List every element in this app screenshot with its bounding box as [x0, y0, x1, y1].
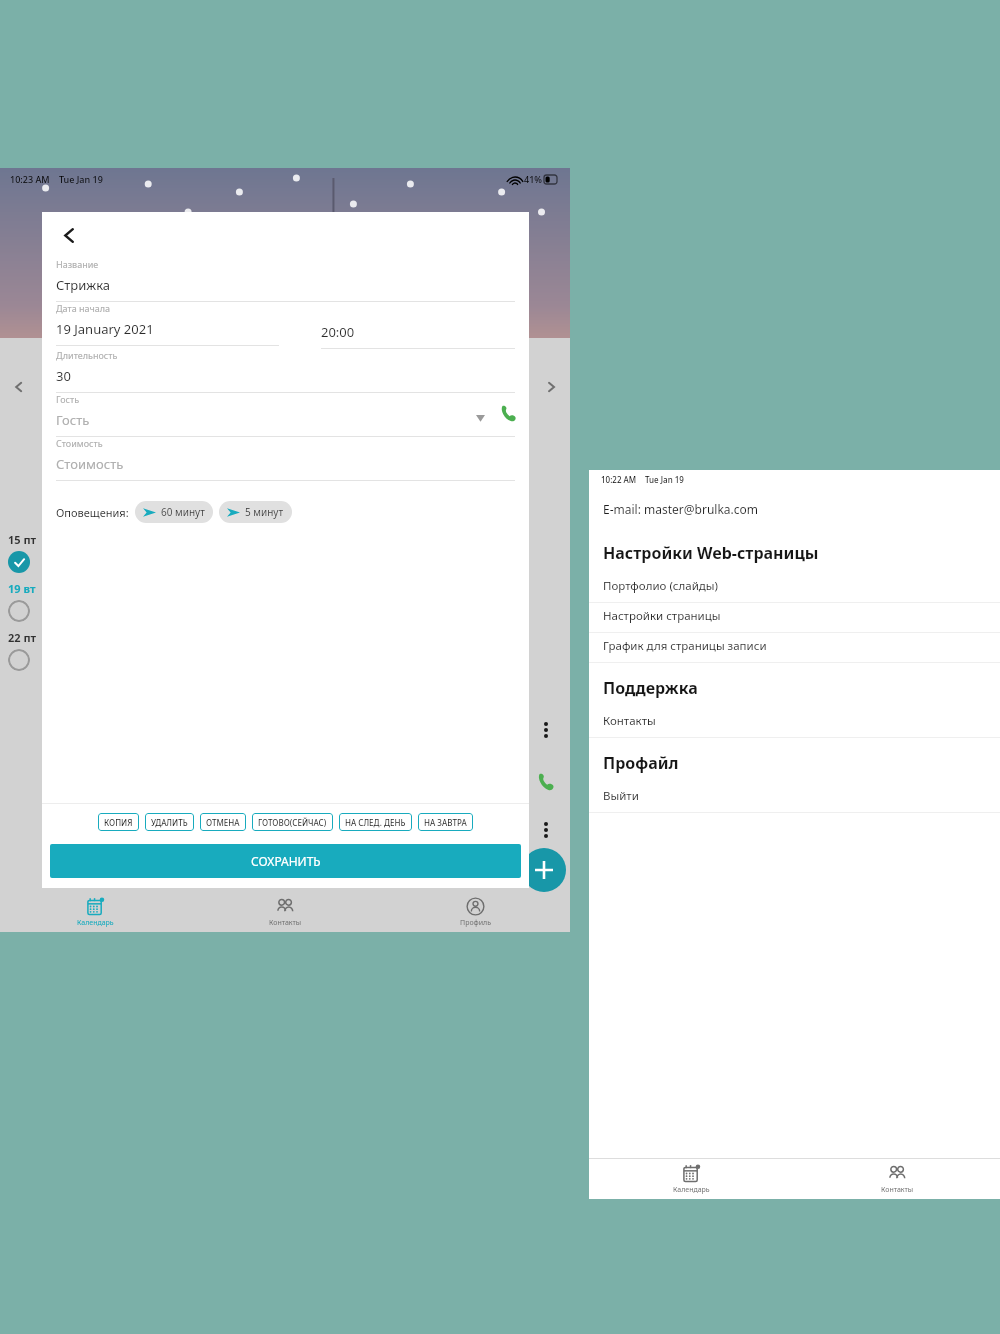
button[interactable]: ОТМЕНА: [200, 813, 246, 831]
button[interactable]: Дата начала: [56, 302, 279, 346]
staticText: Tue Jan 19: [645, 474, 684, 485]
staticText: Дата начала: [56, 302, 111, 314]
staticText: 30: [56, 367, 71, 385]
button[interactable]: Контакты: [190, 892, 380, 932]
staticText: Длительность: [56, 349, 118, 361]
staticText: Выйти: [603, 788, 639, 804]
button[interactable]: 20:00: [321, 323, 515, 349]
button[interactable]: Add: [522, 848, 566, 892]
staticText: Стоимость: [56, 437, 103, 449]
button[interactable]: Mark done: [8, 649, 30, 671]
staticText: 20:00: [321, 323, 355, 341]
button[interactable]: More options: [534, 718, 558, 742]
staticText: Tue Jan 19: [59, 173, 103, 185]
staticText: ОТМЕНА: [206, 817, 240, 828]
staticText: 10:22 AM: [601, 474, 637, 485]
button[interactable]: Done: [8, 551, 30, 573]
button[interactable]: ГОТОВО(СЕЙЧАС): [252, 813, 333, 831]
staticText: E-mail: master@brulka.com: [603, 501, 759, 517]
staticText: Гость: [56, 411, 90, 429]
button[interactable]: Стоимость: [56, 437, 515, 481]
staticText: Профиль: [460, 918, 491, 928]
staticText: Контакты: [881, 1185, 914, 1195]
button[interactable]: НА СЛЕД. ДЕНЬ: [339, 813, 412, 831]
staticText: Стрижка: [56, 276, 111, 294]
button[interactable]: НА ЗАВТРА: [418, 813, 473, 831]
button[interactable]: Call: [532, 768, 560, 796]
staticText: Поддержка: [603, 677, 698, 699]
button[interactable]: СОХРАНИТЬ: [50, 844, 521, 878]
staticText: НА ЗАВТРА: [424, 817, 467, 828]
staticText: 10:23 AM: [10, 173, 50, 185]
staticText: 19 вт: [8, 581, 36, 596]
staticText: Оповещения:: [56, 505, 129, 520]
staticText: 19 January 2021: [56, 320, 154, 338]
button[interactable]: More options: [534, 818, 558, 842]
staticText: Название: [56, 258, 99, 270]
staticText: 5 минут: [245, 505, 284, 519]
staticText: УДАЛИТЬ: [151, 817, 188, 828]
staticText: Стоимость: [56, 455, 124, 473]
staticText: Гость: [56, 393, 80, 405]
button[interactable]: 60 минут: [135, 501, 213, 523]
staticText: Портфолио (слайды): [603, 578, 718, 594]
button[interactable]: Гость: [56, 393, 515, 437]
staticText: КОПИЯ: [104, 817, 133, 828]
button[interactable]: График для страницы записи: [589, 633, 1000, 663]
staticText: НА СЛЕД. ДЕНЬ: [345, 817, 406, 828]
staticText: 60 минут: [161, 505, 205, 519]
button[interactable]: Next: [540, 376, 562, 398]
staticText: Контакты: [603, 713, 656, 729]
staticText: ГОТОВО(СЕЙЧАС): [258, 817, 327, 828]
button[interactable]: Настройки страницы: [589, 603, 1000, 633]
staticText: Контакты: [269, 918, 302, 928]
button[interactable]: Календарь: [0, 892, 190, 932]
staticText: 22 пт: [8, 630, 37, 645]
button[interactable]: Контакты: [794, 1159, 1000, 1199]
button[interactable]: Портфолио (слайды): [589, 573, 1000, 603]
staticText: Календарь: [673, 1185, 710, 1195]
button[interactable]: Mark done: [8, 600, 30, 622]
button[interactable]: Выйти: [589, 783, 1000, 813]
button[interactable]: Длительность: [56, 349, 515, 393]
button[interactable]: Профиль: [380, 892, 570, 932]
staticText: Календарь: [77, 918, 114, 928]
staticText: Профайл: [603, 752, 679, 774]
button[interactable]: КОПИЯ: [98, 813, 139, 831]
button[interactable]: Название: [56, 258, 515, 302]
button[interactable]: УДАЛИТЬ: [145, 813, 194, 831]
staticText: 15 пт: [8, 532, 37, 547]
button[interactable]: Call guest: [495, 400, 521, 426]
button[interactable]: Календарь: [589, 1159, 794, 1199]
button[interactable]: Контакты: [589, 708, 1000, 738]
staticText: СОХРАНИТЬ: [251, 853, 321, 869]
button[interactable]: Back: [52, 218, 86, 252]
staticText: 41%: [524, 173, 542, 185]
button[interactable]: 5 минут: [219, 501, 292, 523]
staticText: График для страницы записи: [603, 638, 767, 654]
staticText: Настройки Web-страницы: [603, 542, 819, 564]
staticText: Настройки страницы: [603, 608, 721, 624]
button[interactable]: Previous: [8, 376, 30, 398]
